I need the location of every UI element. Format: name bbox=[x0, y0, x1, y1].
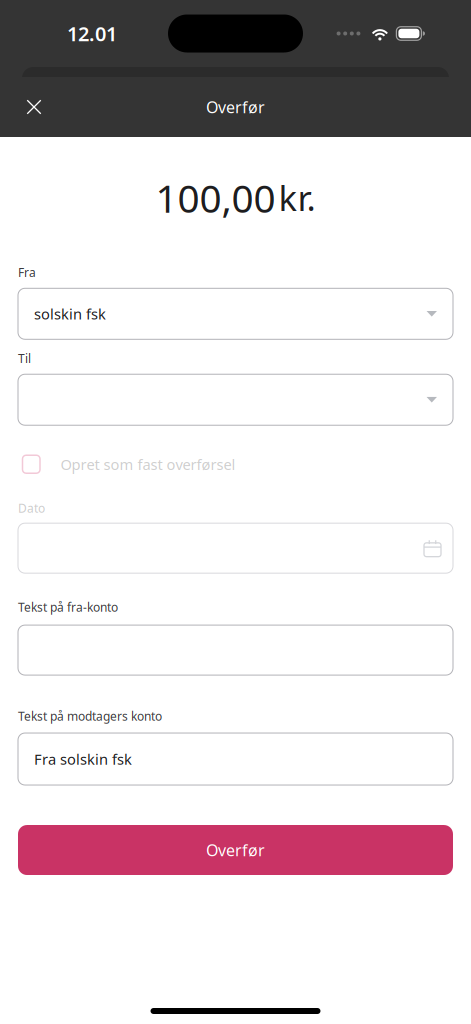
button[interactable] bbox=[18, 523, 453, 573]
button[interactable] bbox=[18, 374, 453, 425]
staticText: Fra solskin fsk bbox=[34, 749, 132, 769]
staticText: Til bbox=[18, 350, 31, 366]
staticText: Overfør bbox=[206, 839, 265, 861]
button[interactable] bbox=[18, 625, 453, 675]
staticText: Overfør bbox=[206, 96, 265, 118]
staticText: Fra bbox=[18, 264, 36, 280]
button[interactable]: Opret som fast overførsel bbox=[18, 454, 453, 474]
button[interactable]: Luk bbox=[14, 87, 54, 127]
staticText: solskin fsk bbox=[34, 304, 106, 323]
button[interactable]: solskin fsk bbox=[18, 288, 453, 339]
staticText: Tekst på modtagers konto bbox=[18, 708, 162, 724]
staticText: Opret som fast overførsel bbox=[60, 454, 235, 474]
staticText: 12.01 bbox=[67, 20, 117, 47]
button[interactable]: Fra solskin fsk bbox=[18, 733, 453, 785]
staticText: kr. bbox=[278, 175, 315, 221]
button[interactable]: Overfør bbox=[18, 825, 453, 875]
staticText: Tekst på fra-konto bbox=[18, 599, 118, 615]
staticText: 100,00 bbox=[155, 172, 275, 223]
staticText: Dato bbox=[18, 500, 45, 516]
